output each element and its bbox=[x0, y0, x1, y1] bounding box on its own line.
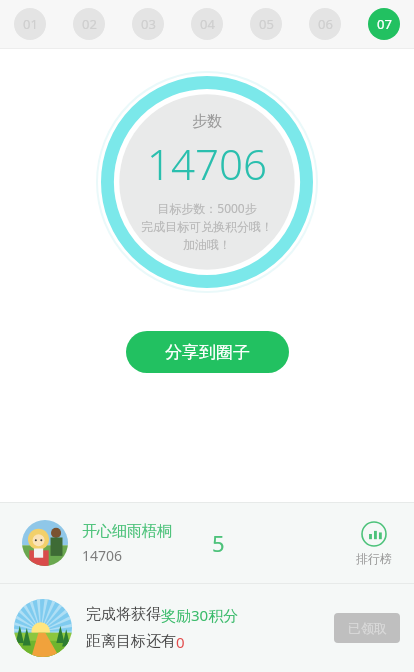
staticText: 14706 bbox=[147, 135, 267, 192]
button[interactable]: 01 bbox=[14, 8, 46, 40]
staticText: 03 bbox=[141, 15, 156, 33]
staticText: 5 bbox=[212, 528, 225, 558]
staticText: 01 bbox=[23, 15, 38, 33]
staticText: 完成目标可兑换积分哦！ bbox=[141, 219, 273, 234]
staticText: 排行榜 bbox=[356, 551, 392, 566]
staticText: 06 bbox=[318, 15, 333, 33]
button[interactable]: 分享到圈子 bbox=[126, 331, 289, 373]
button[interactable]: 06 bbox=[309, 8, 341, 40]
staticText: 14706 bbox=[82, 546, 123, 565]
staticText: 05 bbox=[259, 15, 274, 33]
staticText: 分享到圈子 bbox=[165, 342, 250, 363]
staticText: 07 bbox=[377, 15, 392, 33]
button[interactable]: 03 bbox=[132, 8, 164, 40]
staticText: 04 bbox=[200, 15, 215, 33]
button[interactable]: 开心细雨梧桐 bbox=[0, 503, 414, 583]
staticText: 加油哦！ bbox=[183, 237, 231, 252]
staticText: 02 bbox=[82, 15, 97, 33]
button[interactable]: 07 bbox=[368, 8, 400, 40]
button[interactable]: 已领取 bbox=[334, 613, 400, 643]
staticText: 距离目标还有 bbox=[86, 632, 176, 651]
button[interactable]: 04 bbox=[191, 8, 223, 40]
staticText: 开心细雨梧桐 bbox=[82, 522, 172, 541]
button[interactable]: 05 bbox=[250, 8, 282, 40]
staticText: 步数 bbox=[192, 112, 222, 131]
staticText: 完成将获得 bbox=[86, 605, 161, 624]
button[interactable]: 排行榜 bbox=[356, 521, 392, 566]
staticText: 已领取 bbox=[348, 620, 387, 636]
button[interactable]: 02 bbox=[73, 8, 105, 40]
staticText: 目标步数：5000步 bbox=[157, 200, 257, 216]
staticText: 奖励30积分 bbox=[161, 605, 239, 625]
staticText: 0 bbox=[176, 632, 185, 652]
